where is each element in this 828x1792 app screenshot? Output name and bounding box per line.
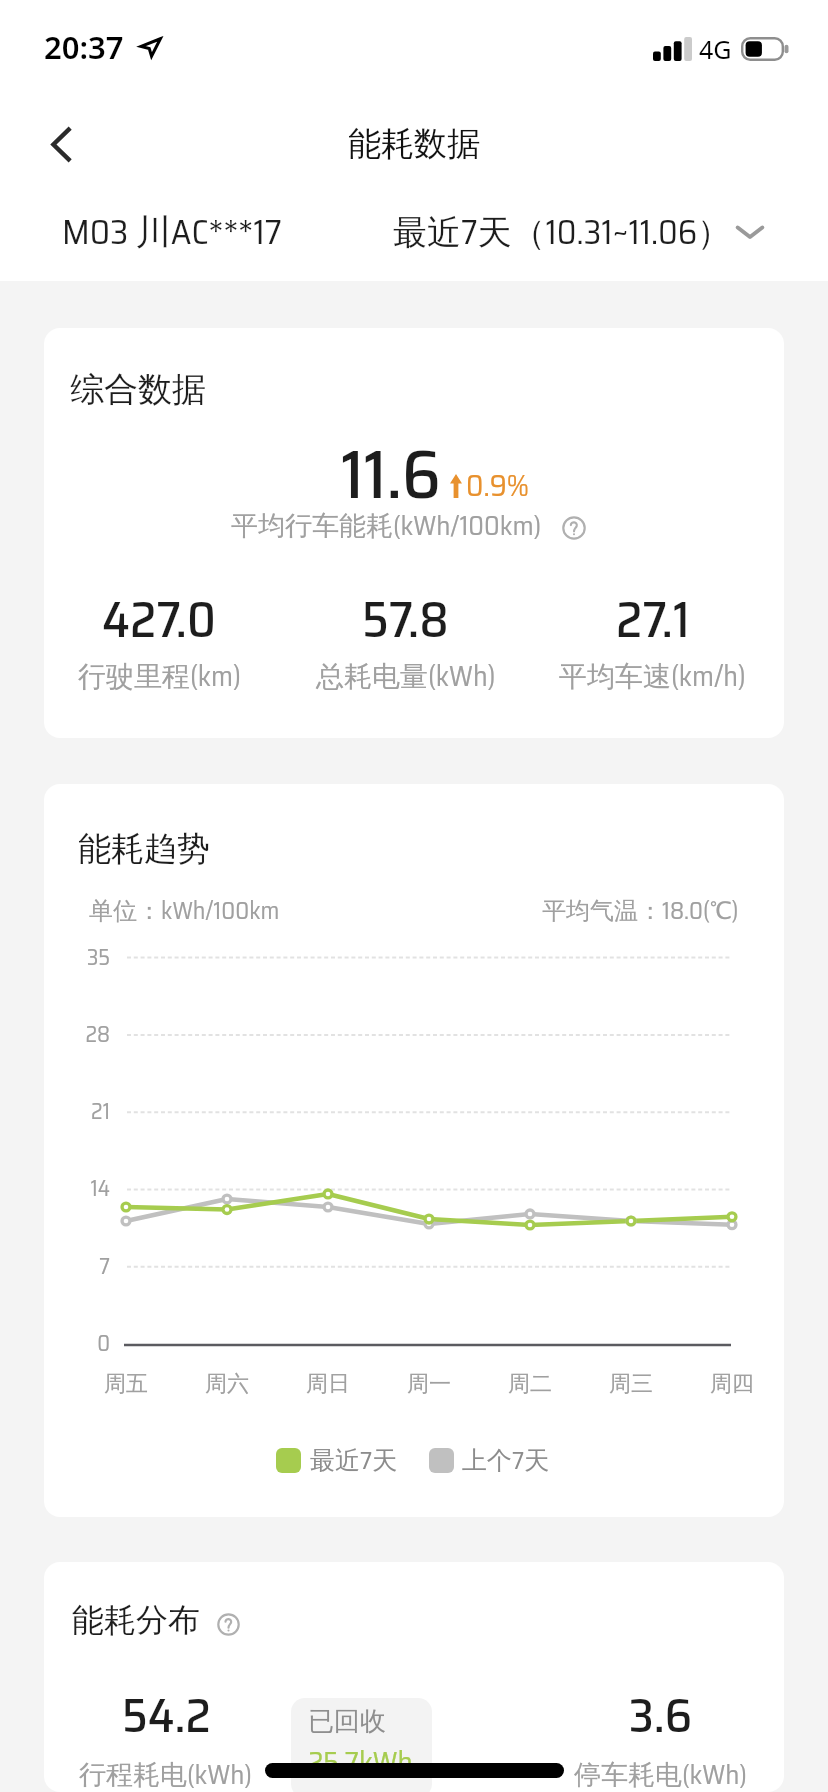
button[interactable]: 最近7天: [276, 1441, 398, 1480]
staticText: 行程耗电(kWh): [79, 1753, 253, 1792]
staticText: 平均行车能耗(kWh/100km): [231, 504, 542, 546]
button[interactable]: 最近7天（10.31~11.06）: [393, 205, 764, 259]
staticText: 27.1: [616, 580, 690, 659]
button[interactable]: 综合数据: [44, 328, 784, 738]
staticText: 周六: [187, 1370, 267, 1398]
staticText: 综合数据: [70, 368, 206, 411]
button[interactable]: 上个7天: [429, 1441, 550, 1480]
staticText: 最近7天（10.31~11.06）: [393, 205, 732, 259]
button[interactable]: What is energy distribution: [217, 1613, 240, 1636]
staticText: 总耗电量(kWh): [316, 654, 496, 698]
staticText: 平均车速(km/h): [559, 654, 746, 698]
staticText: 周五: [86, 1370, 166, 1398]
staticText: 4G: [699, 32, 732, 66]
staticText: 28: [44, 1017, 110, 1052]
staticText: 0: [44, 1326, 110, 1361]
staticText: 周四: [692, 1370, 772, 1398]
staticText: 停车耗电(kWh): [574, 1753, 748, 1792]
button[interactable]: 能耗分布: [44, 1562, 784, 1792]
staticText: 35: [44, 940, 110, 975]
staticText: 0.9%: [466, 462, 529, 509]
staticText: 427.0: [102, 580, 216, 659]
staticText: 7: [44, 1249, 110, 1284]
staticText: 21: [44, 1094, 110, 1129]
staticText: 14: [44, 1171, 110, 1206]
staticText: 能耗数据: [348, 123, 480, 165]
staticText: 54.2: [122, 1678, 211, 1754]
staticText: 20:37: [44, 26, 124, 68]
button[interactable]: Back: [32, 115, 90, 173]
staticText: 平均气温：18.0(℃): [542, 892, 739, 930]
staticText: 能耗趋势: [78, 828, 210, 870]
staticText: 行驶里程(km): [78, 654, 241, 698]
staticText: 周三: [591, 1370, 671, 1398]
staticText: 已回收: [308, 1705, 386, 1738]
staticText: 周二: [490, 1370, 570, 1398]
staticText: 11.6: [341, 421, 441, 528]
staticText: 最近7天: [310, 1441, 398, 1480]
button[interactable]: What is average driving energy consumpti…: [562, 516, 586, 540]
staticText: 57.8: [362, 580, 449, 659]
staticText: 单位：kWh/100km: [89, 892, 280, 930]
button[interactable]: M03 川AC***17: [62, 204, 282, 259]
button[interactable]: 能耗趋势: [44, 784, 784, 1517]
staticText: 3.6: [629, 1678, 693, 1754]
staticText: 周日: [288, 1370, 368, 1398]
staticText: M03 川AC***17: [62, 204, 282, 259]
staticText: 周一: [389, 1370, 469, 1398]
staticText: 25.7kWh: [308, 1739, 413, 1785]
staticText: 上个7天: [462, 1441, 550, 1480]
staticText: 能耗分布: [72, 1600, 200, 1640]
